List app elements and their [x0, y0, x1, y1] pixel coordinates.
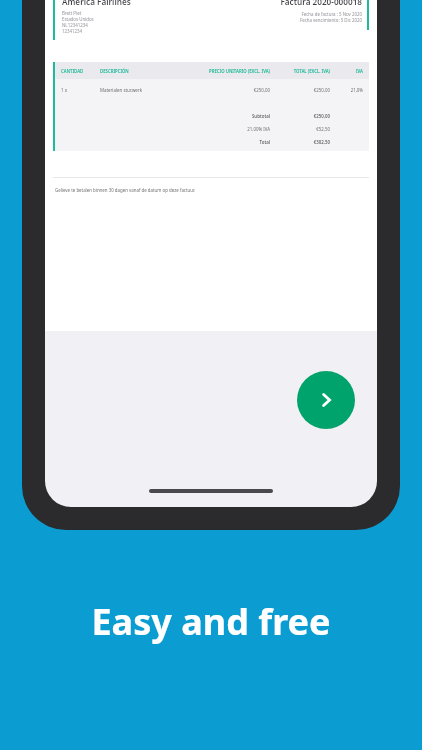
staticText: Gelieve te betalen binnen 30 dagen vanaf…: [55, 187, 196, 193]
button[interactable]: Next: [297, 371, 355, 429]
staticText: 1 x: [61, 87, 100, 93]
staticText: Subtotal: [183, 113, 270, 119]
staticText: Estados Unidos: [62, 16, 94, 22]
staticText: 21,00% IVA: [183, 126, 270, 132]
staticText: Brett Piet: [62, 10, 82, 16]
staticText: DESCRIPCIÓN: [100, 68, 183, 74]
staticText: America Fairlines: [62, 0, 131, 7]
staticText: €302,50: [270, 139, 330, 145]
staticText: €250,00: [270, 87, 330, 93]
staticText: TOTAL (EXCL. IVA): [270, 68, 330, 74]
staticText: €52,50: [270, 126, 330, 132]
staticText: Fecha de factura : 5 Nov 2020: [301, 11, 362, 17]
staticText: €250,00: [270, 113, 330, 119]
staticText: €250,00: [183, 87, 270, 93]
staticText: NL12341234: [62, 22, 88, 28]
staticText: IVA: [330, 68, 363, 74]
staticText: Total: [183, 139, 270, 145]
staticText: Fecha vencimiento: 5 Dic 2020: [299, 17, 362, 23]
staticText: 21,0%: [330, 87, 363, 93]
staticText: 12341234: [62, 28, 83, 34]
staticText: Materialen stucwerk: [100, 87, 183, 93]
staticText: Easy and free: [0, 597, 422, 646]
staticText: PRECIO UNITARIO (EXCL. IVA): [183, 68, 270, 74]
staticText: Factura 2020-000018: [280, 0, 362, 7]
staticText: CANTIDAD: [61, 68, 100, 74]
